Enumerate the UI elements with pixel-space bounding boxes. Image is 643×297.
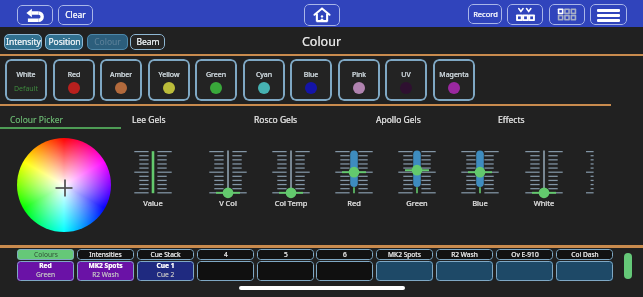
- staticText: Default: [5, 84, 47, 94]
- button[interactable]: Magenta: [433, 59, 475, 101]
- button[interactable]: Cyan: [243, 59, 285, 101]
- staticText: White: [5, 70, 47, 80]
- staticText: Yellow: [148, 70, 190, 80]
- button[interactable]: Effects: [488, 112, 610, 130]
- button[interactable]: MK2 Spots: [376, 249, 433, 280]
- staticText: Effects: [498, 114, 525, 126]
- button[interactable]: Red: [333, 148, 375, 196]
- staticText: Colour: [0, 33, 643, 50]
- staticText: UV: [385, 70, 427, 80]
- staticText: Red: [17, 261, 74, 270]
- staticText: Position: [48, 36, 81, 48]
- button[interactable]: R2 Wash: [436, 249, 493, 280]
- button[interactable]: White: [5, 59, 47, 101]
- button[interactable]: Red: [53, 59, 95, 101]
- staticText: Green: [17, 270, 74, 279]
- staticText: 4: [224, 250, 228, 259]
- button[interactable]: Presets: [507, 4, 543, 25]
- button[interactable]: Fader: [577, 148, 619, 196]
- button[interactable]: Clear: [58, 5, 93, 25]
- button[interactable]: Blue: [459, 148, 501, 196]
- staticText: Ov E-910: [511, 250, 539, 259]
- staticText: Red: [53, 70, 95, 80]
- button[interactable]: Value: [132, 148, 174, 196]
- button[interactable]: Yellow: [148, 59, 190, 101]
- staticText: Record: [473, 9, 498, 19]
- staticText: Cue 1: [137, 261, 194, 270]
- button[interactable]: Rosco Gels: [244, 112, 366, 130]
- button[interactable]: Green: [195, 59, 237, 101]
- staticText: Red: [324, 198, 384, 208]
- staticText: Col Dash: [571, 250, 599, 259]
- staticText: Cue Stack: [150, 250, 181, 259]
- staticText: Col Temp: [261, 198, 321, 208]
- staticText: Intensity: [6, 36, 41, 48]
- staticText: Green: [195, 70, 237, 80]
- staticText: R2 Wash: [451, 250, 478, 259]
- staticText: Rosco Gels: [254, 114, 298, 126]
- button[interactable]: Colour Picker: [0, 112, 122, 130]
- staticText: Colour Picker: [10, 114, 64, 126]
- button[interactable]: Apollo Gels: [366, 112, 488, 130]
- staticText: MK2 Spots: [388, 250, 421, 259]
- button[interactable]: Amber: [100, 59, 142, 101]
- button[interactable]: Colour wheel: [17, 138, 111, 232]
- button[interactable]: Col Dash: [556, 249, 613, 280]
- button[interactable]: UV: [385, 59, 427, 101]
- button[interactable]: Home: [304, 4, 340, 26]
- button[interactable]: Lee Gels: [122, 112, 244, 130]
- staticText: Colours: [34, 250, 58, 259]
- staticText: Green: [387, 198, 447, 208]
- staticText: V Col: [198, 198, 258, 208]
- staticText: Intensities: [89, 250, 122, 259]
- button[interactable]: Cue Stack: [137, 249, 194, 280]
- staticText: MK2 Spots: [77, 261, 134, 270]
- button[interactable]: Pink: [338, 59, 380, 101]
- button[interactable]: Intensity: [4, 34, 42, 50]
- button[interactable]: White: [523, 148, 565, 196]
- button[interactable]: Colour: [87, 34, 128, 50]
- staticText: 5: [284, 250, 288, 259]
- button[interactable]: Record: [468, 4, 502, 24]
- button[interactable]: Position: [45, 34, 83, 50]
- staticText: Magenta: [433, 70, 475, 80]
- staticText: Clear: [65, 9, 86, 21]
- staticText: 6: [343, 250, 347, 259]
- button[interactable]: Grid view: [549, 4, 585, 25]
- button[interactable]: Beam: [130, 34, 165, 50]
- button[interactable]: Ov E-910: [496, 249, 553, 280]
- staticText: Lee Gels: [132, 114, 166, 126]
- button[interactable]: 4: [197, 249, 254, 280]
- button[interactable]: 5: [257, 249, 314, 280]
- button[interactable]: V Col: [207, 148, 249, 196]
- button[interactable]: Blue: [290, 59, 332, 101]
- staticText: Cyan: [243, 70, 285, 80]
- staticText: Pink: [338, 70, 380, 80]
- button[interactable]: Colours: [17, 249, 74, 280]
- button[interactable]: Undo: [17, 5, 53, 25]
- staticText: White: [514, 198, 574, 208]
- staticText: Amber: [100, 70, 142, 80]
- button[interactable]: Master fader: [624, 253, 632, 279]
- staticText: Blue: [290, 70, 332, 80]
- button[interactable]: 6: [316, 249, 373, 280]
- staticText: Cue 2: [137, 270, 194, 279]
- staticText: Value: [123, 198, 183, 208]
- staticText: Beam: [136, 36, 160, 48]
- button[interactable]: Col Temp: [270, 148, 312, 196]
- staticText: Blue: [450, 198, 510, 208]
- staticText: R2 Wash: [77, 270, 134, 279]
- staticText: Colour: [94, 36, 121, 48]
- button[interactable]: Menu: [590, 4, 627, 25]
- button[interactable]: Green: [396, 148, 438, 196]
- button[interactable]: Intensities: [77, 249, 134, 280]
- staticText: Apollo Gels: [376, 114, 421, 126]
